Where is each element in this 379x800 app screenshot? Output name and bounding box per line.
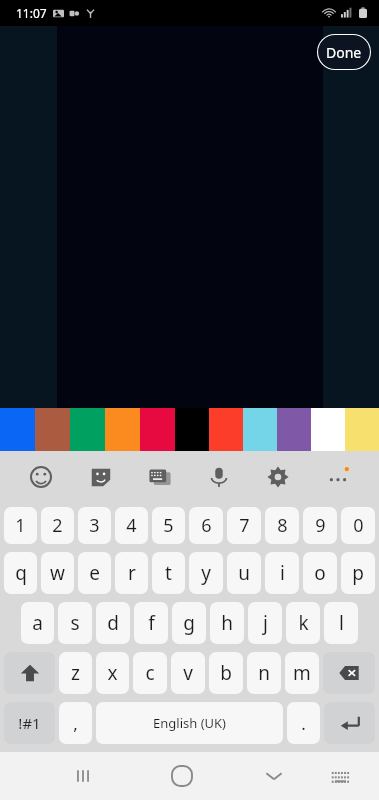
button[interactable]: Backspace bbox=[323, 652, 375, 694]
staticText: l bbox=[339, 610, 344, 636]
staticText: 6 bbox=[201, 513, 212, 538]
staticText: j bbox=[263, 610, 268, 636]
button[interactable]: y bbox=[189, 552, 223, 594]
staticText: c bbox=[145, 660, 155, 686]
staticText: 7 bbox=[239, 513, 250, 538]
button[interactable]: !#1 bbox=[4, 702, 55, 744]
staticText: 8 bbox=[277, 513, 288, 538]
button[interactable]: . bbox=[287, 702, 320, 744]
button[interactable]: , bbox=[59, 702, 92, 744]
button[interactable]: e bbox=[78, 552, 111, 594]
button[interactable]: j bbox=[248, 602, 282, 644]
staticText: z bbox=[71, 660, 80, 686]
button[interactable]: x bbox=[96, 652, 129, 694]
button[interactable]: Change keyboard bbox=[316, 752, 364, 800]
button[interactable]: 8 bbox=[265, 507, 299, 544]
button[interactable]: c bbox=[133, 652, 167, 694]
button[interactable]: Switch keyboard bbox=[138, 455, 182, 499]
staticText: y bbox=[201, 560, 211, 586]
button[interactable]: Done bbox=[317, 34, 371, 70]
staticText: m bbox=[293, 660, 311, 686]
button[interactable]: Enter bbox=[324, 702, 375, 744]
staticText: u bbox=[238, 560, 250, 586]
button[interactable]: n bbox=[247, 652, 281, 694]
button[interactable]: 1 bbox=[4, 507, 37, 544]
button[interactable]: q bbox=[4, 552, 37, 594]
button[interactable]: Recents bbox=[59, 752, 107, 800]
button[interactable]: t bbox=[152, 552, 185, 594]
staticText: r bbox=[128, 560, 136, 586]
button[interactable]: Home bbox=[158, 752, 206, 800]
button[interactable]: b bbox=[209, 652, 243, 694]
button[interactable]: Shift bbox=[4, 652, 55, 694]
button[interactable]: f bbox=[134, 602, 168, 644]
staticText: . bbox=[301, 712, 306, 735]
staticText: 1 bbox=[15, 513, 26, 538]
button[interactable]: Settings bbox=[256, 455, 300, 499]
button[interactable]: Emoji bbox=[19, 455, 63, 499]
button[interactable]: g bbox=[172, 602, 206, 644]
button[interactable]: m bbox=[285, 652, 319, 694]
button[interactable]: h bbox=[210, 602, 244, 644]
staticText: 11:07 bbox=[16, 5, 47, 21]
button[interactable]: 5 bbox=[152, 507, 185, 544]
button[interactable]: 0 bbox=[341, 507, 375, 544]
button[interactable]: 7 bbox=[227, 507, 261, 544]
staticText: b bbox=[220, 660, 232, 686]
staticText: s bbox=[70, 610, 80, 636]
button[interactable]: r bbox=[115, 552, 148, 594]
button[interactable]: s bbox=[58, 602, 92, 644]
button[interactable]: k bbox=[286, 602, 320, 644]
staticText: 5 bbox=[163, 513, 174, 538]
button[interactable]: Hide keyboard bbox=[250, 752, 298, 800]
staticText: g bbox=[183, 610, 195, 636]
staticText: !#1 bbox=[18, 713, 41, 733]
staticText: p bbox=[352, 560, 364, 586]
button[interactable]: Voice input bbox=[197, 455, 241, 499]
staticText: e bbox=[89, 560, 100, 586]
button[interactable]: l bbox=[324, 602, 358, 644]
staticText: 0 bbox=[353, 513, 364, 538]
staticText: 2 bbox=[52, 513, 63, 538]
staticText: t bbox=[165, 560, 172, 586]
staticText: f bbox=[148, 610, 155, 636]
staticText: q bbox=[15, 560, 27, 586]
staticText: i bbox=[280, 560, 285, 586]
staticText: n bbox=[258, 660, 270, 686]
button[interactable]: d bbox=[96, 602, 130, 644]
button[interactable]: o bbox=[303, 552, 337, 594]
button[interactable]: 9 bbox=[303, 507, 337, 544]
staticText: 3 bbox=[89, 513, 100, 538]
button[interactable]: 6 bbox=[189, 507, 223, 544]
button[interactable]: 3 bbox=[78, 507, 111, 544]
button[interactable]: z bbox=[59, 652, 92, 694]
button[interactable]: More options bbox=[316, 455, 360, 499]
button[interactable]: 2 bbox=[41, 507, 74, 544]
staticText: w bbox=[50, 560, 65, 586]
staticText: , bbox=[73, 712, 78, 735]
staticText: k bbox=[298, 610, 309, 636]
staticText: x bbox=[107, 660, 118, 686]
button[interactable]: v bbox=[171, 652, 205, 694]
button[interactable]: a bbox=[21, 602, 54, 644]
button[interactable]: w bbox=[41, 552, 74, 594]
button[interactable]: i bbox=[265, 552, 299, 594]
staticText: 9 bbox=[315, 513, 326, 538]
button[interactable]: Stickers bbox=[79, 455, 123, 499]
button[interactable]: p bbox=[341, 552, 375, 594]
staticText: 4 bbox=[126, 513, 137, 538]
button[interactable]: u bbox=[227, 552, 261, 594]
button[interactable]: 4 bbox=[115, 507, 148, 544]
button[interactable]: English (UK) bbox=[96, 702, 283, 744]
